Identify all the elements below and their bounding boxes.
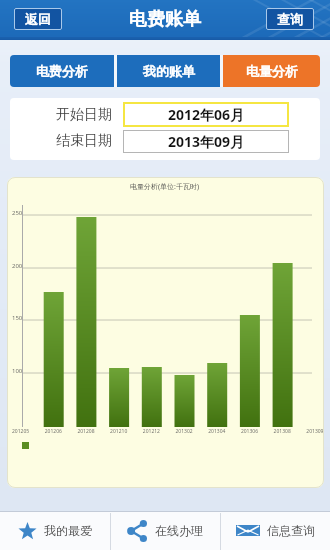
staticText: 2013年09月	[168, 132, 245, 151]
button[interactable]: 在线办理	[110, 511, 220, 550]
staticText: 查询	[277, 11, 303, 27]
staticText: 2012年06月	[168, 105, 245, 124]
button[interactable]: 返回	[14, 8, 62, 30]
button[interactable]: 我的账单	[117, 55, 220, 87]
button[interactable]: 2013年09月	[123, 130, 289, 153]
button[interactable]: 信息查询	[220, 511, 330, 550]
staticText: 电量分析	[246, 63, 298, 79]
button[interactable]: 电费分析	[10, 55, 114, 87]
staticText: 返回	[25, 11, 51, 27]
button[interactable]: 我的最爱	[0, 511, 110, 550]
button[interactable]: 电量分析	[223, 55, 320, 87]
button[interactable]: 2012年06月	[123, 102, 289, 127]
staticText: 我的账单	[143, 63, 195, 79]
staticText: 信息查询	[267, 523, 315, 538]
staticText: 电费账单	[129, 8, 201, 31]
staticText: 结束日期	[56, 132, 112, 150]
staticText: 我的最爱	[44, 523, 92, 538]
staticText: 开始日期	[56, 106, 112, 124]
staticText: 在线办理	[155, 523, 203, 538]
button[interactable]: 查询	[266, 8, 314, 30]
staticText: 电费分析	[36, 63, 88, 79]
